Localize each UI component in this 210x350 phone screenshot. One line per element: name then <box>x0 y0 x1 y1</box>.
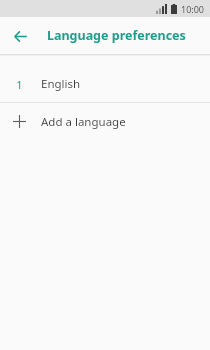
staticText: Language preferences <box>47 27 186 44</box>
button[interactable]: Back <box>8 24 32 48</box>
staticText: English <box>41 76 81 92</box>
staticText: 1 <box>16 77 23 92</box>
staticText: Add a language <box>41 114 126 130</box>
button[interactable]: Add a language <box>0 103 210 140</box>
staticText: 10:00 <box>181 3 205 15</box>
button[interactable]: 1 <box>0 66 210 102</box>
